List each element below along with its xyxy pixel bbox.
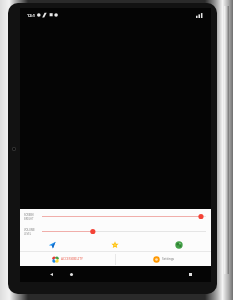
button[interactable]: SCREEN — [24, 212, 206, 221]
button[interactable]: Settings — [116, 252, 211, 266]
button[interactable]: ACCESSIBILITY — [20, 252, 115, 266]
staticText: SCREEN — [24, 213, 34, 217]
staticText: LEVEL — [24, 232, 32, 236]
staticText: BRIGHT — [24, 217, 34, 221]
staticText: Settings — [162, 257, 175, 261]
button[interactable]: Navigation — [20, 239, 83, 251]
button[interactable]: Favorites — [83, 239, 147, 251]
staticText: 12:1 — [27, 13, 35, 18]
button[interactable]: VOLUME — [24, 227, 206, 236]
staticText: ACCESSIBILITY — [61, 257, 83, 261]
button[interactable]: Browser — [147, 239, 211, 251]
button[interactable]: Back — [46, 269, 56, 279]
button[interactable]: Home — [66, 269, 76, 279]
button[interactable]: Recent apps — [185, 269, 195, 279]
staticText: VOLUME — [24, 228, 35, 232]
